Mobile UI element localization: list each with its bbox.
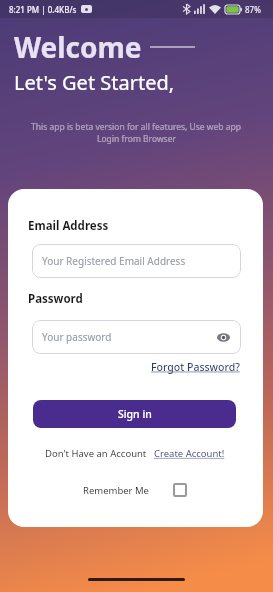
staticText: This app is beta version for all feature… xyxy=(31,121,242,133)
button[interactable]: Your password xyxy=(32,320,241,354)
staticText: 8:21 PM | 0.4KB/s xyxy=(9,4,77,15)
staticText: Welcome xyxy=(14,28,142,66)
staticText: Don't Have an Account xyxy=(45,447,147,460)
staticText: Email Address xyxy=(28,218,109,234)
staticText: Your password xyxy=(42,330,112,344)
staticText: Password xyxy=(28,291,83,307)
button[interactable]: Create Account! xyxy=(154,447,225,460)
button[interactable]: Your Registered Email Address xyxy=(32,244,241,278)
button[interactable]: Remember Me xyxy=(28,483,241,497)
staticText: Your Registered Email Address xyxy=(42,254,186,268)
staticText: 87% xyxy=(245,4,261,15)
staticText: Let's Get Started, xyxy=(14,69,175,96)
button[interactable]: Forgot Password? xyxy=(151,360,241,374)
staticText: Sign in xyxy=(118,407,152,421)
staticText: Remember Me xyxy=(83,484,149,497)
staticText: Login from Browser xyxy=(97,133,176,145)
button[interactable]: Sign in xyxy=(33,400,236,428)
